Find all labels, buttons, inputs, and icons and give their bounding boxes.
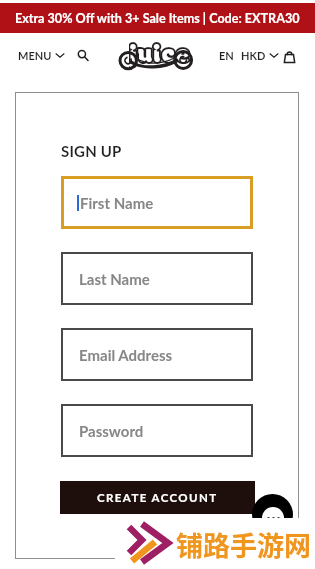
button[interactable]: HKD <box>241 49 278 62</box>
staticText: Last Name <box>79 270 150 288</box>
button[interactable]: Extra 30% Off with 3+ Sale Items | Code:… <box>0 3 315 33</box>
button[interactable]: Password <box>61 404 253 457</box>
staticText: Email Address <box>79 346 173 364</box>
staticText: HKD <box>241 49 266 62</box>
staticText: SIGN UP <box>61 142 122 160</box>
button[interactable]: Last Name <box>61 252 253 305</box>
button[interactable]: Email Address <box>61 328 253 381</box>
staticText: MENU <box>18 49 52 62</box>
button[interactable]: Search <box>77 50 89 62</box>
button[interactable]: MENU <box>18 49 64 62</box>
staticText: 铺路手游网 <box>176 525 311 564</box>
staticText: Password <box>79 422 144 440</box>
button[interactable]: EN <box>219 49 234 62</box>
staticText: Extra 30% Off with 3+ Sale Items | Code:… <box>15 11 300 26</box>
staticText: CREATE ACCOUNT <box>97 491 218 505</box>
button[interactable]: Cart <box>284 52 295 63</box>
button[interactable]: First Name <box>61 176 253 229</box>
button[interactable]: Chat <box>252 494 293 535</box>
staticText: First Name <box>80 194 154 212</box>
staticText: juice <box>129 36 191 68</box>
button[interactable]: CREATE ACCOUNT <box>60 481 255 514</box>
